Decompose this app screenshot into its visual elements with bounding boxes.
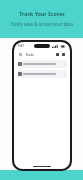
button[interactable]: Filter [55,52,60,57]
staticText: Track Your Scores [19,10,65,17]
button[interactable]: Add [61,52,66,57]
button[interactable] [17,70,67,78]
button[interactable]: Menu [18,52,23,57]
staticText: 9:41 [18,44,24,48]
button[interactable] [17,60,67,68]
staticText: Easily save & access your data [11,21,73,27]
staticText: Tests [25,52,34,57]
